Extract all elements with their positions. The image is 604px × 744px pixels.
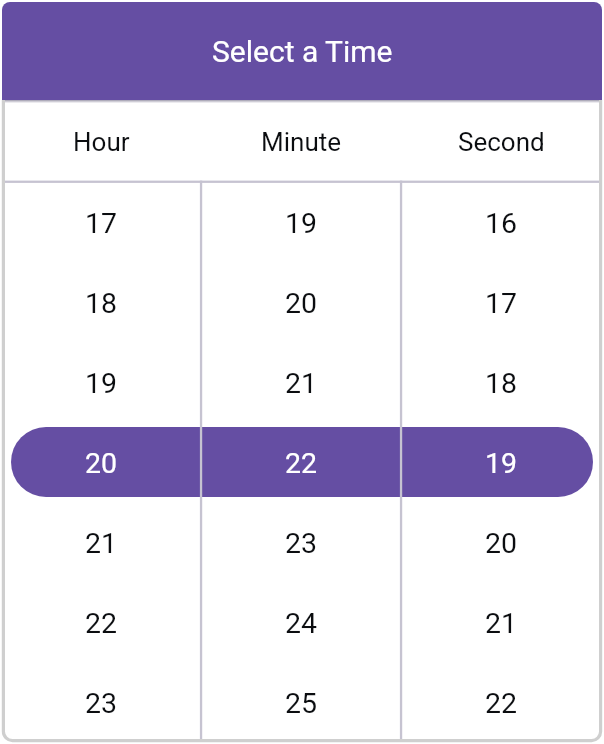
button[interactable]: Minute 20 (201, 262, 401, 342)
staticText: 21 (85, 527, 118, 560)
button[interactable]: Second 17 (401, 262, 601, 342)
button[interactable]: Hour 17 (2, 182, 201, 262)
button[interactable]: Second 18 (401, 342, 601, 422)
staticText: 18 (85, 287, 118, 320)
staticText: 25 (285, 687, 318, 720)
button[interactable]: Second 22 (401, 662, 601, 742)
staticText: 17 (85, 207, 118, 240)
button[interactable]: Minute 19 (201, 182, 401, 262)
button[interactable]: Minute 25 (201, 662, 401, 742)
staticText: 19 (85, 367, 118, 400)
button[interactable]: Hour (2, 100, 201, 182)
staticText: 19 (285, 207, 318, 240)
staticText: 21 (485, 607, 518, 640)
staticText: 21 (285, 367, 318, 400)
button[interactable]: Hour 21 (2, 502, 201, 582)
staticText: 23 (285, 527, 318, 560)
button[interactable]: Hour 23 (2, 662, 201, 742)
staticText: 20 (485, 527, 518, 560)
staticText: 20 (85, 447, 118, 480)
button[interactable]: Second (401, 100, 601, 182)
button[interactable]: Minute (201, 100, 401, 182)
button[interactable]: Minute 24 (201, 582, 401, 662)
button[interactable]: Minute 23 (201, 502, 401, 582)
button[interactable]: Minute 22 (201, 422, 401, 502)
staticText: 18 (485, 367, 518, 400)
staticText: 23 (85, 687, 118, 720)
button[interactable]: Select a Time (2, 2, 602, 100)
staticText: Select a Time (212, 34, 393, 69)
staticText: 16 (485, 207, 518, 240)
staticText: 22 (285, 447, 318, 480)
staticText: 22 (85, 607, 118, 640)
staticText: Hour (73, 127, 130, 157)
button[interactable]: Second 19 (401, 422, 601, 502)
staticText: 20 (285, 287, 318, 320)
staticText: 17 (485, 287, 518, 320)
staticText: 19 (485, 447, 518, 480)
staticText: Second (458, 127, 545, 157)
button[interactable]: Hour 22 (2, 582, 201, 662)
button[interactable]: Hour 19 (2, 342, 201, 422)
staticText: 24 (285, 607, 318, 640)
button[interactable]: Second 20 (401, 502, 601, 582)
button[interactable]: Hour 18 (2, 262, 201, 342)
staticText: 22 (485, 687, 518, 720)
button[interactable]: Second 21 (401, 582, 601, 662)
button[interactable]: Hour 20 (2, 422, 201, 502)
button[interactable]: Minute 21 (201, 342, 401, 422)
staticText: Minute (261, 127, 342, 157)
button[interactable]: Second 16 (401, 182, 601, 262)
